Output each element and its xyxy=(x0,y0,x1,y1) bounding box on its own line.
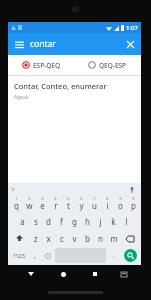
staticText: g xyxy=(72,216,77,227)
staticText: 1 xyxy=(15,196,18,201)
button[interactable]: 1 xyxy=(9,196,23,213)
button[interactable]: 6 xyxy=(75,196,88,213)
staticText: w xyxy=(26,200,33,211)
staticText: QEQ-ESP xyxy=(99,61,127,70)
button[interactable]: 8 xyxy=(101,196,114,213)
staticText: 9 xyxy=(119,196,122,201)
button[interactable]: Comma xyxy=(28,248,41,263)
button[interactable]: m xyxy=(107,230,120,247)
staticText: ESP-QEQ xyxy=(33,61,61,70)
button[interactable]: Voice input xyxy=(127,185,137,195)
staticText: 3 xyxy=(41,196,44,201)
button[interactable]: Recent apps xyxy=(79,268,111,280)
button[interactable]: Search xyxy=(124,249,137,262)
button[interactable]: k xyxy=(107,213,120,230)
staticText: 0 xyxy=(132,196,135,201)
button[interactable]: QEQ-ESP xyxy=(74,55,141,75)
button[interactable]: c xyxy=(55,230,68,247)
button[interactable]: Back xyxy=(14,268,47,280)
staticText: 6 xyxy=(80,196,83,201)
staticText: ?123 xyxy=(13,252,25,259)
button[interactable]: ?123 xyxy=(9,248,28,263)
staticText: , xyxy=(34,251,36,261)
button[interactable]: s xyxy=(29,213,42,230)
staticText: f xyxy=(60,216,63,227)
staticText: Ajpuk xyxy=(14,93,29,100)
button[interactable]: 3 xyxy=(36,196,49,213)
button[interactable]: a xyxy=(16,213,29,230)
staticText: e xyxy=(40,200,45,211)
button[interactable]: contar xyxy=(30,38,119,50)
button[interactable]: g xyxy=(68,213,81,230)
button[interactable]: b xyxy=(81,230,94,247)
staticText: 5 xyxy=(67,196,70,201)
button[interactable]: z xyxy=(29,230,42,247)
staticText: 8 xyxy=(106,196,109,201)
staticText: Contar, Conteo, enumerar xyxy=(14,81,107,91)
staticText: m xyxy=(110,233,118,244)
staticText: c xyxy=(60,233,64,244)
button[interactable]: v xyxy=(68,230,81,247)
staticText: y xyxy=(79,200,84,211)
staticText: k xyxy=(111,216,116,227)
staticText: o xyxy=(118,200,123,211)
staticText: 7 xyxy=(93,196,96,201)
staticText: j xyxy=(99,216,102,227)
staticText: a xyxy=(20,216,25,227)
staticText: v xyxy=(72,233,77,244)
button[interactable]: Backspace xyxy=(120,230,140,247)
button[interactable]: Contar, Conteo, enumerar xyxy=(8,76,141,105)
button[interactable]: f xyxy=(55,213,68,230)
staticText: p xyxy=(131,200,136,211)
staticText: l xyxy=(125,216,128,227)
button[interactable]: 4 xyxy=(49,196,62,213)
staticText: q xyxy=(14,200,19,211)
button[interactable]: 9 xyxy=(114,196,127,213)
button[interactable]: x xyxy=(42,230,55,247)
staticText: 2 xyxy=(28,196,31,201)
button[interactable]: d xyxy=(42,213,55,230)
staticText: s xyxy=(34,216,38,227)
staticText: z xyxy=(34,233,38,244)
button[interactable]: h xyxy=(81,213,94,230)
button[interactable]: 7 xyxy=(88,196,101,213)
staticText: h xyxy=(85,216,90,227)
staticText: . xyxy=(113,251,115,261)
staticText: u xyxy=(92,200,97,211)
button[interactable]: Home xyxy=(47,268,79,280)
button[interactable]: 2 xyxy=(23,196,36,213)
button[interactable]: Emoji xyxy=(41,248,54,263)
button[interactable]: Period xyxy=(107,248,120,263)
button[interactable]: > xyxy=(11,185,16,195)
staticText: r xyxy=(54,200,58,211)
button[interactable]: j xyxy=(94,213,107,230)
staticText: d xyxy=(46,216,51,227)
staticText: 1:07 xyxy=(126,24,138,32)
button[interactable]: Open navigation menu xyxy=(8,33,30,55)
button[interactable]: Shift xyxy=(9,230,29,247)
staticText: t xyxy=(67,200,70,211)
button[interactable]: ESP-QEQ xyxy=(8,55,74,75)
staticText: n xyxy=(98,233,103,244)
button[interactable]: Clear search xyxy=(119,33,141,55)
button[interactable]: l xyxy=(120,213,133,230)
staticText: i xyxy=(106,200,109,211)
staticText: 4 xyxy=(54,196,57,201)
button[interactable]: 0 xyxy=(127,196,140,213)
staticText: b xyxy=(85,233,90,244)
button[interactable]: n xyxy=(94,230,107,247)
button[interactable]: 5 xyxy=(62,196,75,213)
staticText: x xyxy=(46,233,51,244)
button[interactable]: Hide keyboard xyxy=(111,268,137,280)
